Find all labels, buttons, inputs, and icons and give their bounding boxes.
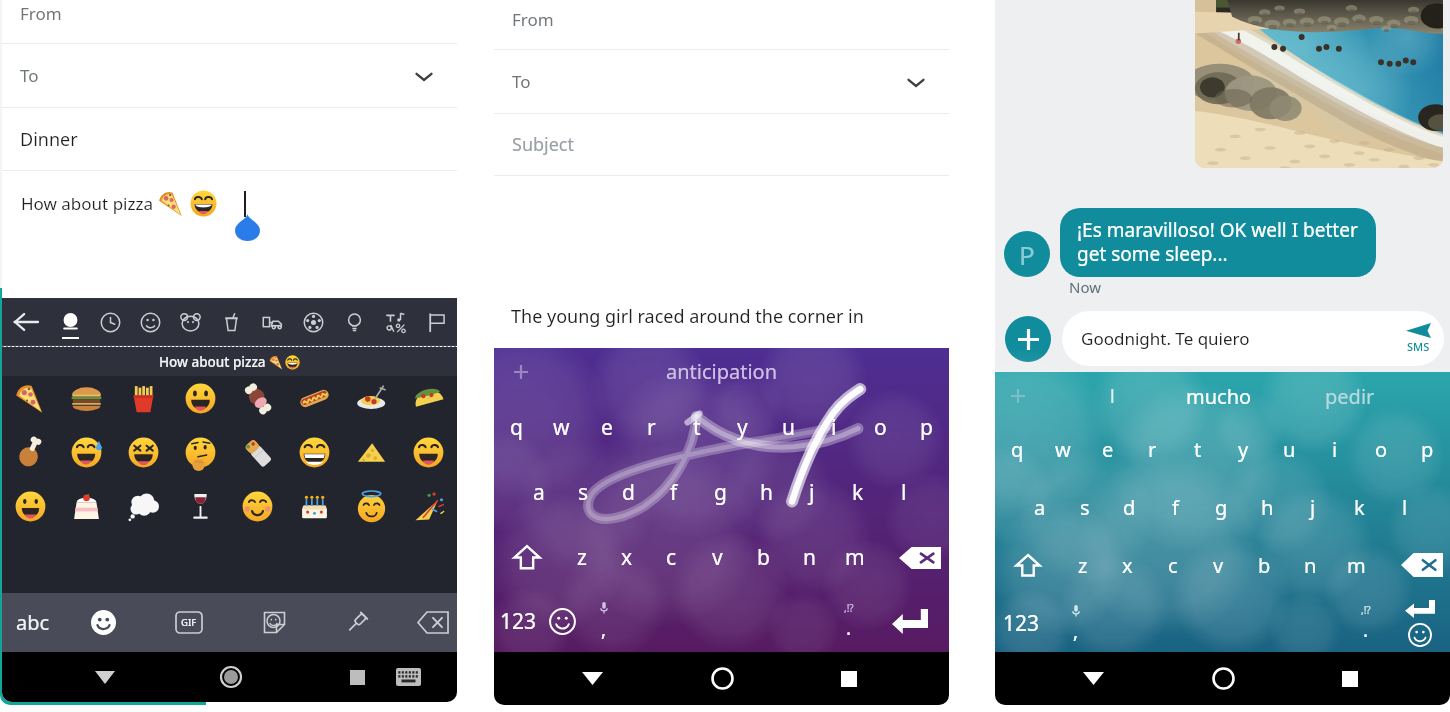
button[interactable]: emoji xyxy=(58,425,115,479)
button[interactable]: smiley xyxy=(130,298,170,346)
button[interactable]: emoji xyxy=(400,479,457,533)
button[interactable]: h xyxy=(743,460,789,525)
button[interactable]: Shift xyxy=(494,525,559,590)
button[interactable]: w xyxy=(1040,420,1085,478)
button[interactable]: Back xyxy=(75,652,135,702)
button[interactable]: Back xyxy=(562,652,622,705)
button[interactable]: emoji xyxy=(172,425,229,479)
button[interactable]: Back xyxy=(2,298,50,346)
button[interactable]: j xyxy=(789,460,835,525)
button[interactable]: m xyxy=(832,525,878,590)
button[interactable]: Dinner xyxy=(2,108,457,170)
button[interactable]: s xyxy=(561,460,606,525)
button[interactable]: emoji xyxy=(2,371,58,425)
button[interactable]: Home xyxy=(1193,652,1253,705)
button[interactable]: Backspace xyxy=(403,593,457,652)
button[interactable]: k xyxy=(835,460,881,525)
button[interactable]: k xyxy=(1336,478,1382,536)
button[interactable]: Backspace xyxy=(878,525,949,590)
button[interactable]: Sticker xyxy=(244,593,304,652)
button[interactable]: emoji xyxy=(229,479,286,533)
button[interactable]: x xyxy=(1105,536,1150,594)
button[interactable]: bulb xyxy=(334,298,375,346)
button[interactable]: n xyxy=(1287,536,1333,594)
button[interactable]: c xyxy=(1150,536,1195,594)
button[interactable]: emoji xyxy=(58,371,115,425)
button[interactable]: f xyxy=(651,460,697,525)
button[interactable]: emoji xyxy=(400,371,457,425)
button[interactable]: r xyxy=(629,395,674,460)
button[interactable]: 123 xyxy=(494,590,542,652)
button[interactable]: Back xyxy=(1063,652,1123,705)
button[interactable]: b xyxy=(1241,536,1287,594)
button[interactable]: From xyxy=(2,0,457,43)
button[interactable]: i xyxy=(811,395,857,460)
button[interactable]: ,!? xyxy=(1342,594,1390,652)
button[interactable]: emoji xyxy=(172,479,229,533)
button[interactable]: To xyxy=(2,44,457,107)
button[interactable]: f xyxy=(1152,478,1198,536)
button[interactable]: Subject xyxy=(494,114,949,175)
button[interactable]: Recents xyxy=(1320,652,1380,705)
button[interactable]: Keyboard xyxy=(378,652,438,702)
button[interactable]: p xyxy=(1404,420,1450,478)
button[interactable]: d xyxy=(606,460,651,525)
button[interactable]: i xyxy=(1312,420,1358,478)
button[interactable]: GIF xyxy=(159,593,219,652)
button[interactable]: From xyxy=(494,0,949,49)
button[interactable]: emoji xyxy=(229,371,286,425)
button[interactable]: c xyxy=(649,525,694,590)
button[interactable]: n xyxy=(786,525,832,590)
button[interactable]: z xyxy=(1060,536,1105,594)
button[interactable]: ball xyxy=(293,298,334,346)
button[interactable]: Add attachment xyxy=(1005,316,1051,362)
button[interactable]: sym xyxy=(375,298,416,346)
button[interactable]: w xyxy=(539,395,584,460)
button[interactable]: Voice input xyxy=(580,590,628,652)
button[interactable]: Backspace xyxy=(1379,536,1450,594)
button[interactable]: ,!? xyxy=(825,590,873,652)
button[interactable]: h xyxy=(1244,478,1290,536)
button[interactable]: t xyxy=(674,395,719,460)
button[interactable]: emoji xyxy=(58,479,115,533)
button[interactable]: Pin xyxy=(329,593,389,652)
button[interactable]: Voice input xyxy=(1052,594,1100,652)
button[interactable]: ¡Es maravilloso! OK well I better get so… xyxy=(1060,208,1376,277)
button[interactable]: s xyxy=(1062,478,1107,536)
button[interactable]: emoji xyxy=(286,479,343,533)
button[interactable]: emoji xyxy=(229,425,286,479)
button[interactable]: Recents xyxy=(327,652,387,702)
button[interactable]: emoji xyxy=(343,371,400,425)
button[interactable]: 123 xyxy=(997,594,1045,652)
button[interactable]: emoji xyxy=(115,479,172,533)
button[interactable]: l xyxy=(1382,478,1428,536)
button[interactable]: u xyxy=(1266,420,1312,478)
button[interactable]: g xyxy=(1198,478,1244,536)
button[interactable]: q xyxy=(494,395,539,460)
button[interactable]: y xyxy=(1220,420,1266,478)
button[interactable]: emoji xyxy=(115,425,172,479)
button[interactable]: a xyxy=(516,460,561,525)
button[interactable]: u xyxy=(765,395,811,460)
button[interactable]: l xyxy=(881,460,927,525)
button[interactable]: car xyxy=(252,298,293,346)
button[interactable]: y xyxy=(719,395,765,460)
button[interactable]: emoji xyxy=(343,479,400,533)
button[interactable]: Shift xyxy=(995,536,1060,594)
button[interactable]: v xyxy=(694,525,740,590)
button[interactable]: emoji xyxy=(115,371,172,425)
button[interactable]: flag xyxy=(416,298,457,346)
button[interactable]: p xyxy=(903,395,949,460)
button[interactable]: e xyxy=(584,395,629,460)
button[interactable]: Enter xyxy=(882,590,938,652)
button[interactable]: abc xyxy=(3,593,63,652)
button[interactable]: Home xyxy=(692,652,752,705)
button[interactable]: g xyxy=(697,460,743,525)
button[interactable]: recent xyxy=(50,298,90,346)
button[interactable]: j xyxy=(1290,478,1336,536)
button[interactable]: Recents xyxy=(819,652,879,705)
button[interactable]: t xyxy=(1175,420,1220,478)
button[interactable]: emoji xyxy=(286,425,343,479)
button[interactable]: cup xyxy=(211,298,252,346)
button[interactable]: a xyxy=(1017,478,1062,536)
